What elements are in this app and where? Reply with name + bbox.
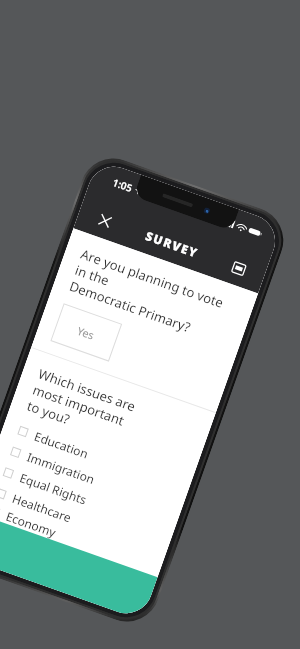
- button[interactable]: Economy: [0, 497, 163, 577]
- button[interactable]: Immigration: [0, 435, 185, 521]
- staticText: Economy: [4, 508, 58, 540]
- staticText: 1:05: [111, 175, 134, 195]
- button[interactable]: Healthcare: [0, 476, 170, 562]
- staticText: Are you planning to vote in the Democrat…: [67, 245, 239, 349]
- staticText: Equal Rights: [18, 469, 89, 508]
- staticText: Immigration: [25, 448, 97, 487]
- staticText: SURVEY: [144, 227, 201, 261]
- button[interactable]: [0, 512, 158, 621]
- staticText: Yes: [75, 323, 97, 343]
- button[interactable]: Calendar: [222, 251, 255, 284]
- button[interactable]: Education: [0, 414, 192, 500]
- button[interactable]: Equal Rights: [0, 455, 178, 541]
- button[interactable]: Close: [88, 204, 121, 237]
- staticText: Education: [32, 428, 91, 462]
- staticText: Which issues are most important to you?: [25, 364, 146, 450]
- button[interactable]: Yes: [50, 303, 122, 362]
- staticText: Healthcare: [10, 490, 74, 526]
